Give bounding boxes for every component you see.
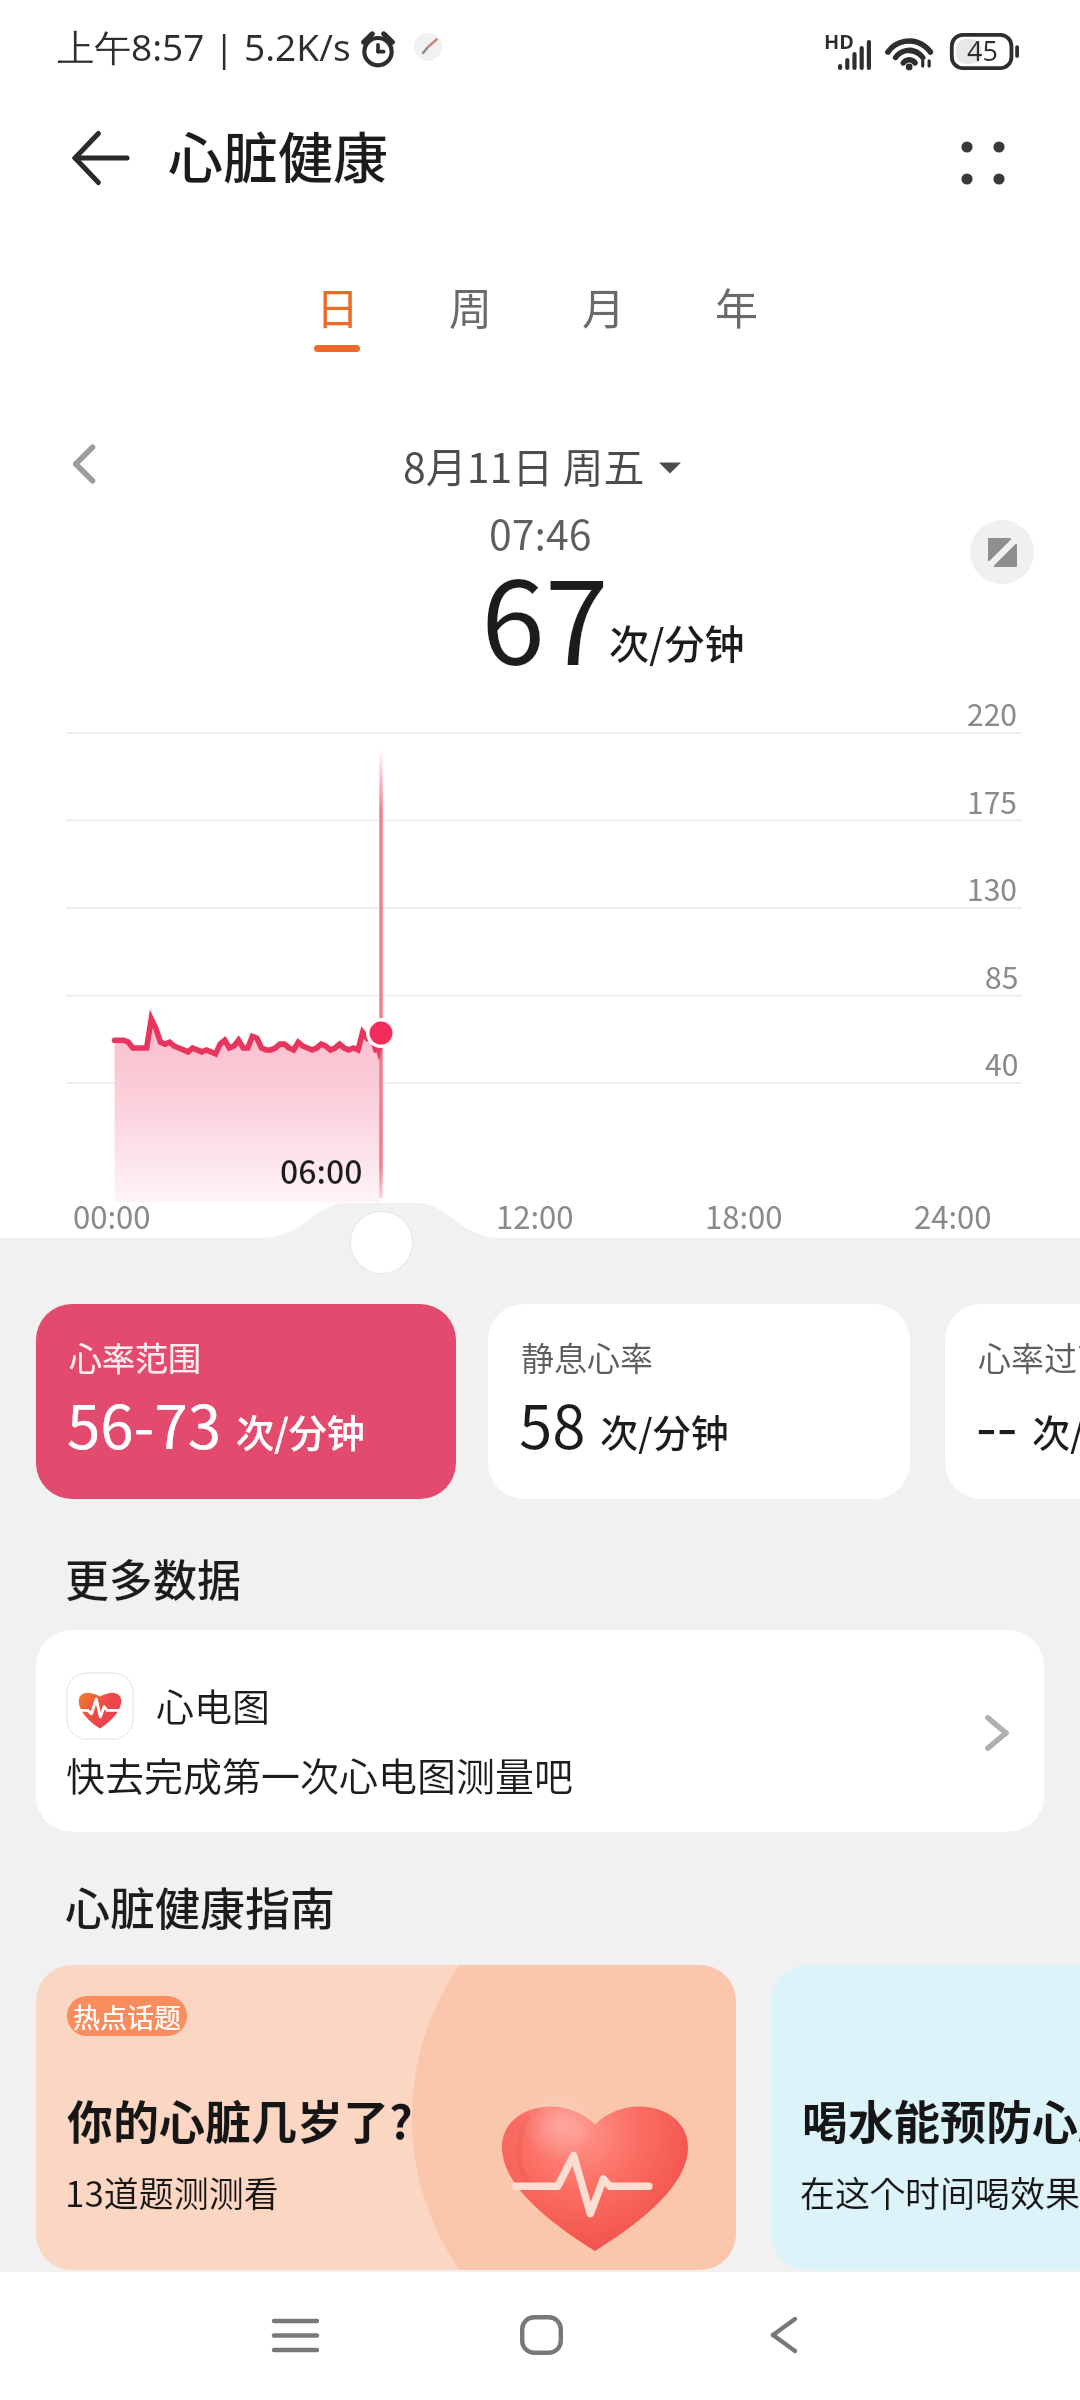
button[interactable]: 静息心率 (488, 1304, 910, 1499)
staticText: 次/分钟 (609, 613, 745, 671)
staticText: 175 (967, 779, 1017, 822)
staticText: 58 (519, 1379, 586, 1466)
staticText: 月 (582, 275, 625, 337)
staticText: 心电图 (156, 1677, 271, 1732)
button[interactable]: Back (45, 104, 155, 214)
button[interactable]: 心率范围 (36, 1304, 456, 1499)
staticText: 06:00 (280, 1147, 363, 1193)
button[interactable]: More options (933, 113, 1033, 213)
staticText: 热点话题 (73, 1997, 181, 2036)
staticText: 在这个时间喝效果好 (800, 2166, 1080, 2217)
button[interactable]: 心电图 (36, 1630, 1044, 1832)
staticText: 日 (316, 275, 359, 337)
staticText: -- (976, 1379, 1018, 1466)
staticText: 220 (967, 691, 1017, 734)
staticText: 67 (481, 532, 609, 699)
button[interactable]: 日 (281, 269, 393, 361)
staticText: 85 (985, 954, 1019, 997)
button[interactable]: 年 (680, 269, 792, 361)
staticText: 喝水能预防心脑血管 (802, 2086, 1080, 2153)
staticText: 24:00 (914, 1193, 992, 1238)
button[interactable]: Home (496, 2290, 586, 2380)
staticText: 周 (449, 275, 492, 337)
staticText: 静息心率 (521, 1333, 653, 1381)
button[interactable]: Back (739, 2290, 829, 2380)
staticText: 心率过高 (978, 1333, 1080, 1381)
button[interactable]: 8月11日 周五 (403, 435, 681, 494)
staticText: HD (824, 28, 854, 55)
staticText: 8月11日 周五 (403, 435, 645, 494)
staticText: 更多数据 (65, 1546, 241, 1610)
button[interactable]: Expand chart (970, 520, 1034, 584)
button[interactable]: 喝水能预防心脑血管 (771, 1965, 1080, 2270)
button[interactable]: 月 (547, 269, 659, 361)
staticText: 年 (715, 275, 758, 337)
staticText: 心脏健康 (168, 114, 389, 194)
staticText: 56-73 (67, 1379, 222, 1466)
staticText: 18:00 (705, 1193, 783, 1238)
staticText: 13道题测测看 (65, 2166, 279, 2217)
staticText: 40 (985, 1041, 1019, 1084)
staticText: 次/分钟 (236, 1403, 365, 1458)
staticText: 心率范围 (69, 1333, 201, 1381)
staticText: 心脏健康指南 (65, 1874, 336, 1939)
button[interactable]: Previous day (48, 427, 122, 501)
staticText: 你的心脏几岁了? (67, 2086, 413, 2153)
staticText: 45 (967, 32, 998, 69)
button[interactable]: 周 (414, 269, 526, 361)
staticText: 00:00 (73, 1193, 151, 1238)
button[interactable]: Recent apps (250, 2290, 340, 2380)
staticText: 次/分钟 (1032, 1403, 1080, 1458)
button[interactable]: 心率过高 (945, 1304, 1080, 1499)
button[interactable]: 热点话题 (36, 1965, 736, 2270)
staticText: 上午8:57 | 5.2K/s (57, 21, 351, 72)
staticText: 次/分钟 (600, 1403, 729, 1458)
staticText: 快去完成第一次心电图测量吧 (66, 1746, 574, 1802)
staticText: 12:00 (496, 1193, 574, 1238)
staticText: 07:46 (489, 502, 592, 561)
staticText: 130 (967, 866, 1017, 909)
